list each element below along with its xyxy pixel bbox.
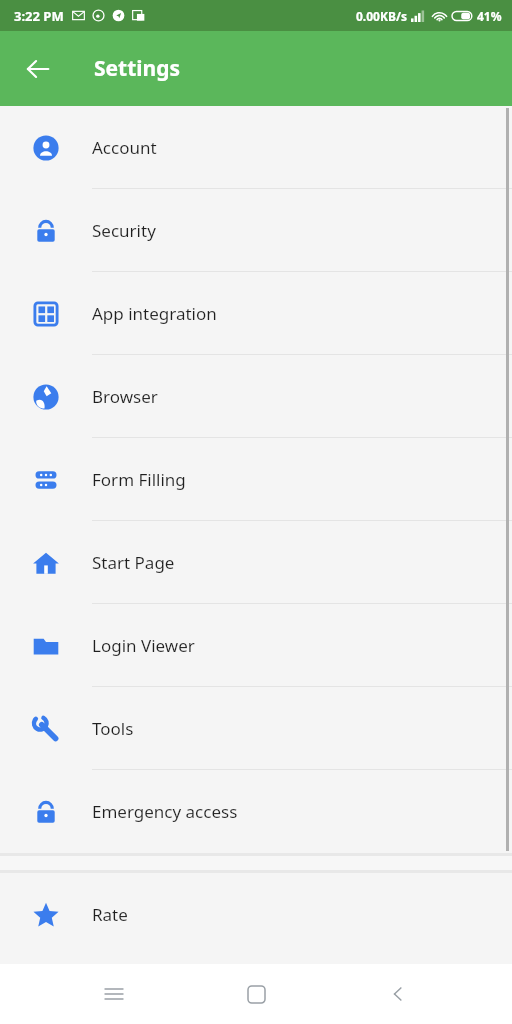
button[interactable]: Form Filling bbox=[0, 438, 512, 521]
button[interactable]: Rate bbox=[0, 873, 512, 956]
button[interactable]: Login Viewer bbox=[0, 604, 512, 687]
button[interactable]: App integration bbox=[0, 272, 512, 355]
button[interactable]: Recents bbox=[86, 966, 142, 1022]
staticText: Emergency access bbox=[92, 800, 238, 823]
button[interactable]: Account bbox=[0, 106, 512, 189]
button[interactable]: Back bbox=[370, 966, 426, 1022]
staticText: 41% bbox=[477, 8, 502, 24]
staticText: 3:22 PM bbox=[14, 7, 64, 25]
staticText: 0.00KB/s bbox=[356, 8, 407, 24]
button[interactable]: Home bbox=[228, 966, 284, 1022]
staticText: Security bbox=[92, 219, 156, 242]
button[interactable]: Browser bbox=[0, 355, 512, 438]
button[interactable]: Emergency access bbox=[0, 770, 512, 853]
staticText: Login Viewer bbox=[92, 634, 195, 657]
staticText: Rate bbox=[92, 903, 128, 926]
staticText: Browser bbox=[92, 385, 158, 408]
staticText: App integration bbox=[92, 302, 217, 325]
staticText: Form Filling bbox=[92, 468, 186, 491]
staticText: Start Page bbox=[92, 551, 175, 574]
button[interactable]: Start Page bbox=[0, 521, 512, 604]
staticText: Account bbox=[92, 136, 157, 159]
button[interactable]: Security bbox=[0, 189, 512, 272]
button[interactable]: Back bbox=[16, 47, 60, 91]
staticText: Tools bbox=[92, 717, 134, 740]
button[interactable]: Tools bbox=[0, 687, 512, 770]
staticText: Settings bbox=[94, 54, 181, 83]
